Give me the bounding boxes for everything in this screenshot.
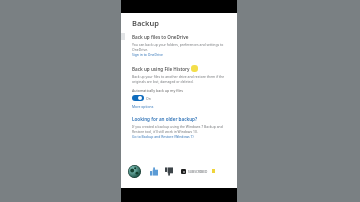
staticText: Back up files to OneDrive	[132, 34, 189, 40]
button[interactable]: Subscribed	[181, 169, 208, 174]
staticText: SUBSCRIBED	[188, 170, 208, 174]
button[interactable]: Sign in to OneDrive	[132, 52, 163, 57]
staticText: Backup	[132, 18, 159, 28]
button[interactable]: Automatically back up my files toggle	[132, 95, 151, 101]
staticText: Back up using File History	[132, 66, 190, 72]
staticText: On	[146, 96, 151, 101]
staticText: Automatically back up my files	[132, 88, 184, 93]
staticText: Back up your files to another drive and …	[132, 74, 232, 84]
staticText: More options	[132, 104, 154, 109]
staticText: You can back up your folders, preference…	[132, 42, 232, 52]
staticText: If you created a backup using the Window…	[132, 124, 232, 134]
button[interactable]: Like	[150, 167, 158, 176]
button[interactable]: Go to Backup and Restore (Windows 7)	[132, 134, 194, 139]
button[interactable]: More options	[132, 104, 154, 109]
staticText: Sign in to OneDrive	[132, 52, 163, 57]
button[interactable]: Dislike	[165, 167, 173, 176]
staticText: Go to Backup and Restore (Windows 7)	[132, 134, 194, 139]
button[interactable]: Channel avatar	[128, 165, 141, 178]
staticText: Looking for an older backup?	[132, 116, 198, 122]
